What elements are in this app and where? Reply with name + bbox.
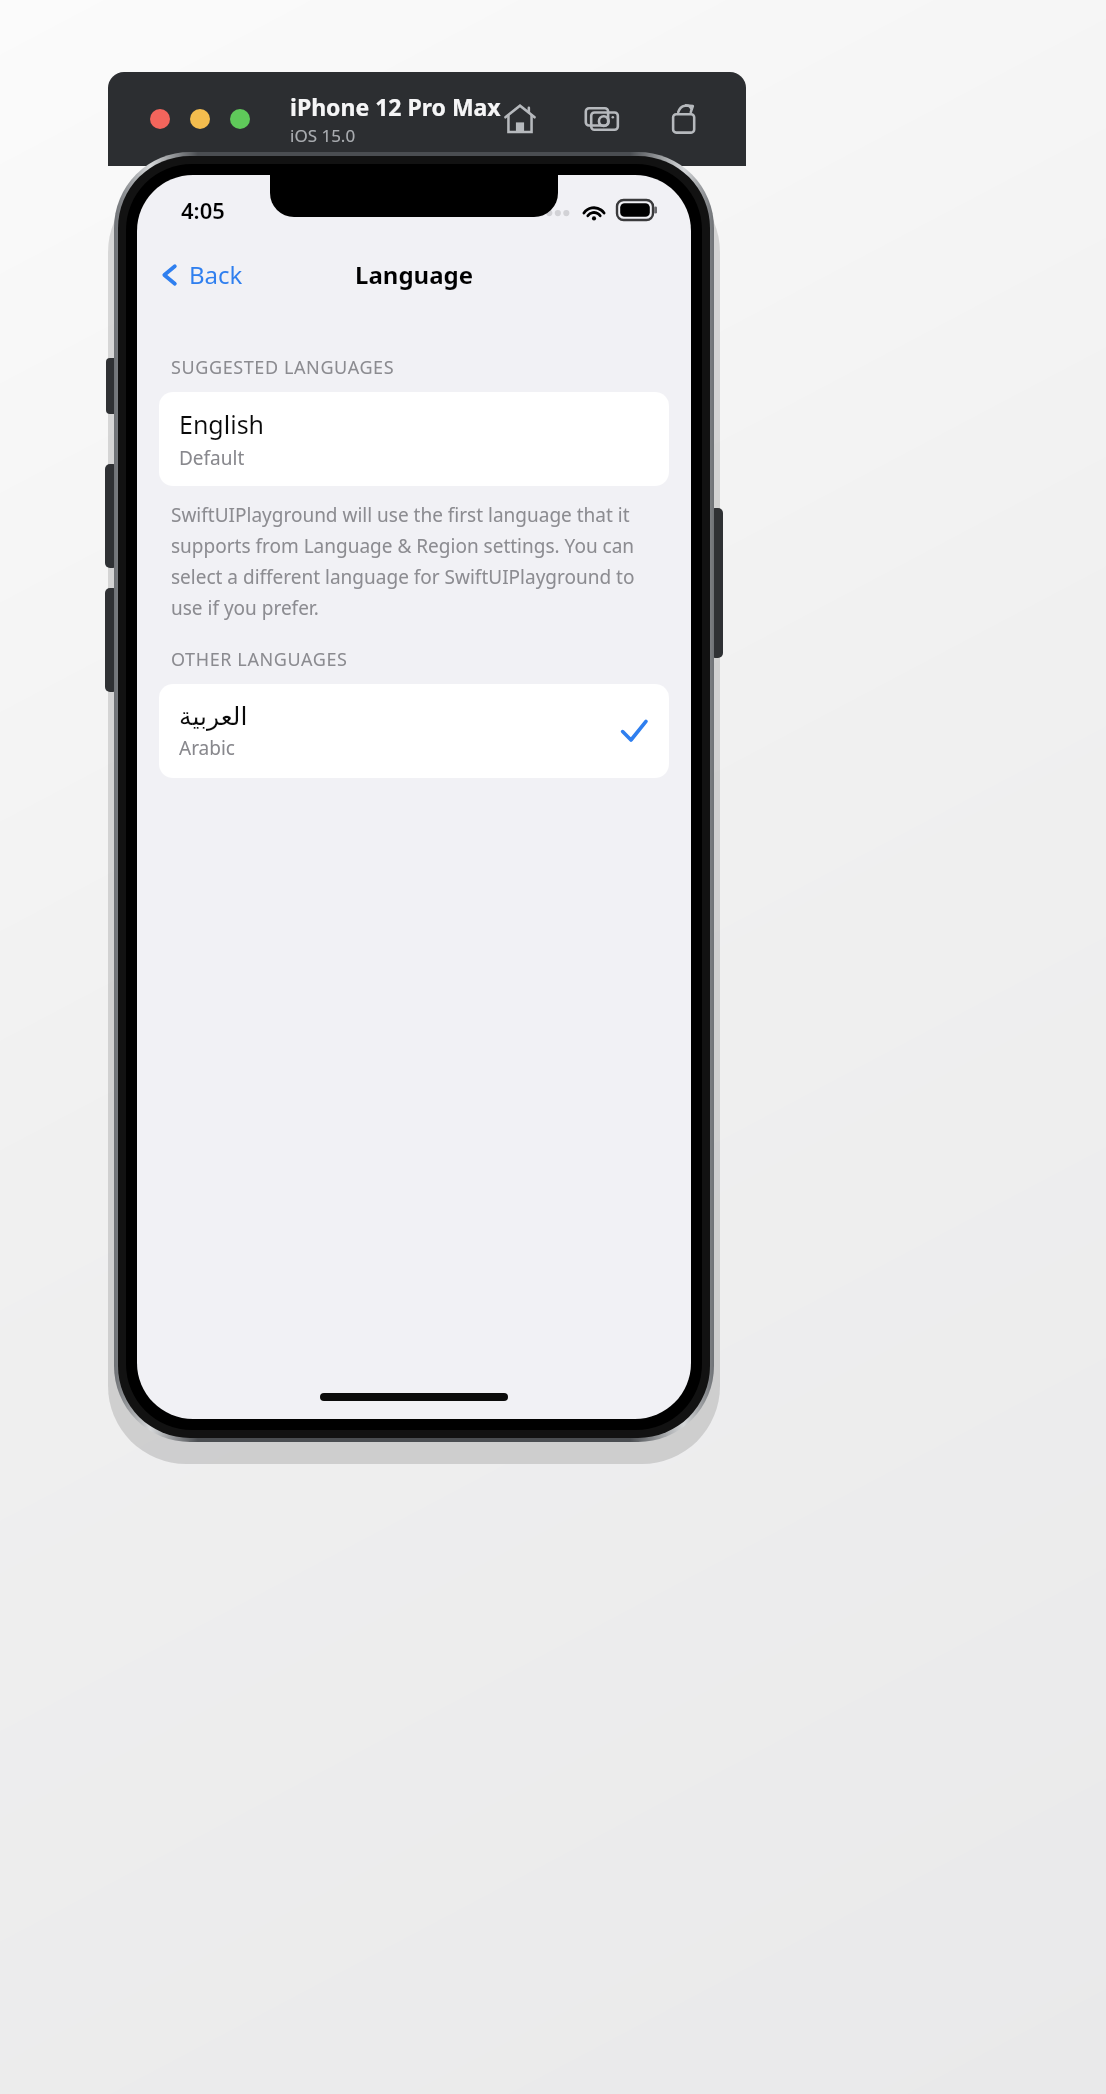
button[interactable]: English <box>159 392 669 486</box>
staticText: Arabic <box>179 735 235 761</box>
staticText: SwiftUIPlayground will use the first lan… <box>171 502 661 621</box>
button[interactable]: Close <box>150 109 170 129</box>
staticText: Default <box>179 445 245 471</box>
button[interactable]: العربية <box>159 684 669 778</box>
staticText: العربية <box>179 702 248 731</box>
staticText: iPhone 12 Pro Max <box>290 91 501 122</box>
button[interactable]: Rotate <box>662 97 706 141</box>
button[interactable]: Screenshot <box>580 97 624 141</box>
staticText: SUGGESTED LANGUAGES <box>171 355 395 380</box>
staticText: Language <box>355 258 474 291</box>
staticText: 4:05 <box>181 195 225 225</box>
staticText: Back <box>189 258 243 291</box>
staticText: OTHER LANGUAGES <box>171 647 348 672</box>
button[interactable]: Minimise <box>190 109 210 129</box>
button[interactable]: Zoom <box>230 109 250 129</box>
staticText: iOS 15.0 <box>290 124 356 147</box>
staticText: English <box>179 407 265 441</box>
button[interactable]: Back <box>159 258 243 291</box>
button[interactable]: Home <box>498 97 542 141</box>
